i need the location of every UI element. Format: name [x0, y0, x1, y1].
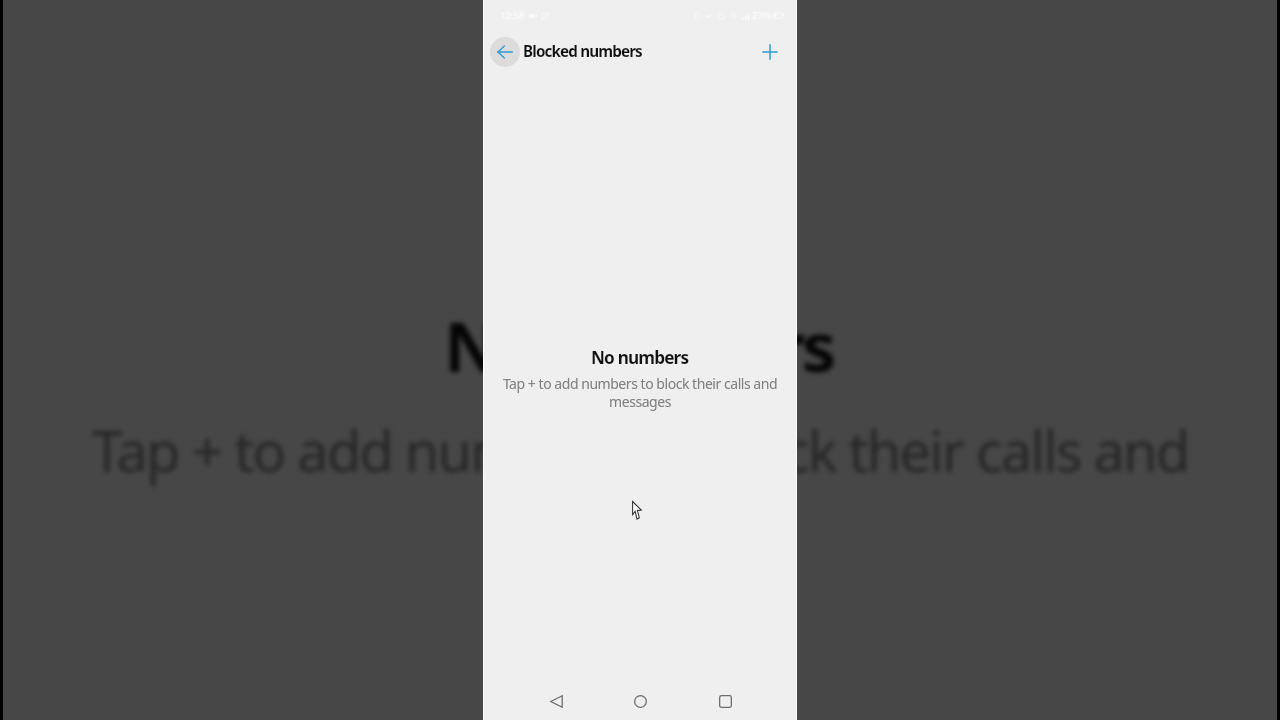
- button[interactable]: Recent apps: [703, 679, 747, 720]
- staticText: 12:58: [500, 9, 525, 22]
- button[interactable]: Home: [618, 679, 662, 720]
- button[interactable]: Navigate up: [490, 37, 520, 67]
- staticText: No numbers: [591, 346, 689, 369]
- staticText: Blocked numbers: [523, 41, 642, 62]
- staticText: No numbers: [444, 300, 836, 392]
- staticText: 23%: [752, 9, 771, 22]
- staticText: Tap + to add numbers to block their call…: [497, 374, 783, 411]
- button[interactable]: Back: [534, 679, 578, 720]
- button[interactable]: Add blocked number: [753, 35, 787, 69]
- staticText: Tap + to add numbers to block their call…: [68, 412, 1212, 560]
